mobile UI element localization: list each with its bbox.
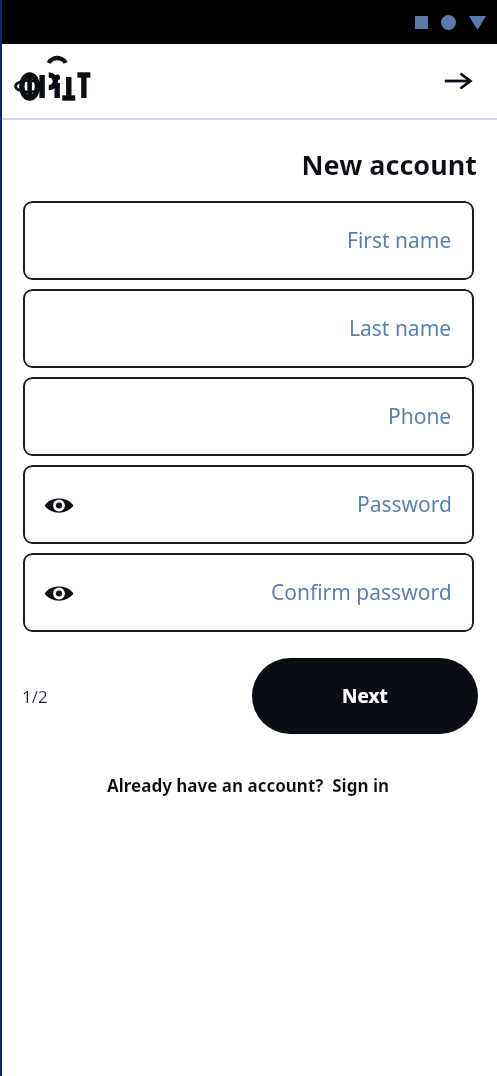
button[interactable]: Last name xyxy=(23,289,474,368)
button[interactable]: Show Password xyxy=(23,465,474,544)
staticText: Password xyxy=(357,490,452,519)
staticText: Next xyxy=(342,683,388,709)
button[interactable]: Phone xyxy=(23,377,474,456)
staticText: Phone xyxy=(388,402,452,431)
staticText: Last name xyxy=(349,314,452,343)
button[interactable]: Next xyxy=(252,658,478,734)
button[interactable]: First name xyxy=(23,201,474,280)
button[interactable]: Show Confirm password xyxy=(39,573,79,613)
button[interactable]: Show Password xyxy=(39,485,79,525)
button[interactable]: Already have an account? Sign in xyxy=(101,770,396,801)
staticText: New account xyxy=(0,146,477,183)
staticText: Already have an account? Sign in xyxy=(107,774,390,797)
staticText: First name xyxy=(347,226,452,255)
button[interactable]: Show Confirm password xyxy=(23,553,474,632)
staticText: Confirm password xyxy=(271,578,452,607)
button[interactable]: Continue xyxy=(435,58,481,104)
staticText: 1/2 xyxy=(22,685,48,708)
